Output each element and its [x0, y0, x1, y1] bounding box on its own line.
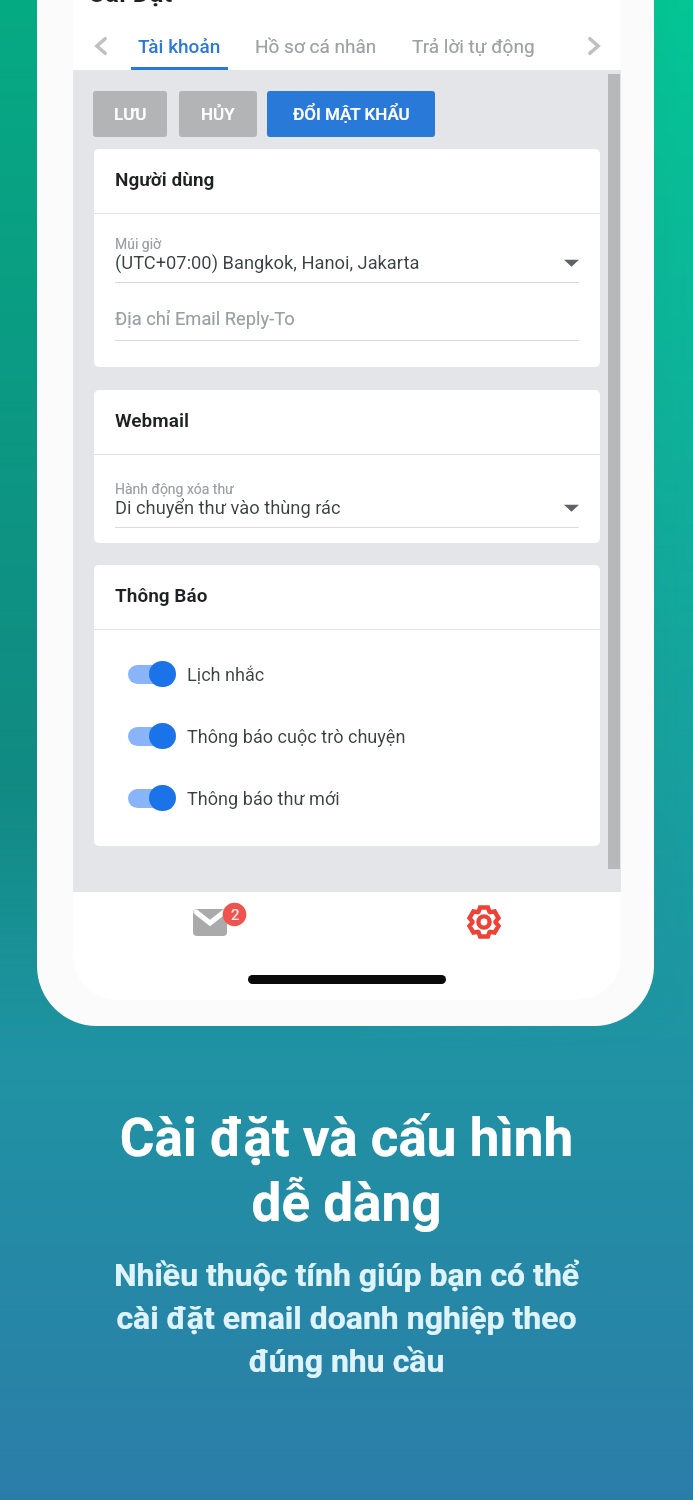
staticText: 2 [231, 906, 240, 924]
button[interactable]: Hồ sơ cá nhân [243, 22, 389, 70]
button[interactable]: Tài khoản [123, 22, 235, 70]
staticText: (UTC+07:00) Bangkok, Hanoi, Jakarta [115, 252, 420, 273]
staticText: Nhiều thuộc tính giúp bạn có thể cài đặt… [0, 1256, 693, 1380]
staticText: Thông báo cuộc trò chuyện [187, 726, 406, 747]
staticText: HỦY [201, 104, 235, 124]
button[interactable]: Mail, 2 unread [73, 892, 347, 952]
button[interactable]: HỦY [179, 91, 257, 137]
staticText: Múi giờ [115, 236, 162, 252]
staticText: Thông báo thư mới [187, 788, 340, 809]
button[interactable]: Thông báo thư mới [128, 767, 600, 829]
staticText: Địa chỉ Email Reply-To [115, 308, 295, 329]
staticText: Cài đặt và cấu hình dễ dàng [0, 1107, 693, 1234]
staticText: Trả lời tự động [412, 35, 535, 57]
staticText: LƯU [114, 104, 147, 124]
button[interactable]: Previous tab [78, 22, 123, 70]
button[interactable]: Thông báo cuộc trò chuyện [128, 705, 600, 767]
staticText: Hành động xóa thư [115, 481, 234, 497]
staticText: Người dùng [115, 168, 215, 190]
button[interactable]: Settings [347, 892, 621, 952]
staticText: Cài Đặt [88, 0, 173, 8]
staticText: Webmail [115, 409, 189, 431]
staticText: Tài khoản [138, 35, 221, 57]
staticText: Di chuyển thư vào thùng rác [115, 497, 341, 518]
staticText: Thông Báo [115, 584, 208, 606]
button[interactable]: LƯU [93, 91, 167, 137]
button[interactable]: ĐỔI MẬT KHẨU [267, 91, 435, 137]
button[interactable]: Lịch nhắc [128, 643, 600, 705]
button[interactable]: Next tab [571, 22, 616, 70]
staticText: ĐỔI MẬT KHẨU [293, 104, 410, 124]
staticText: Lịch nhắc [187, 664, 265, 685]
button[interactable]: Trả lời tự động [400, 22, 547, 70]
staticText: Hồ sơ cá nhân [255, 35, 377, 57]
